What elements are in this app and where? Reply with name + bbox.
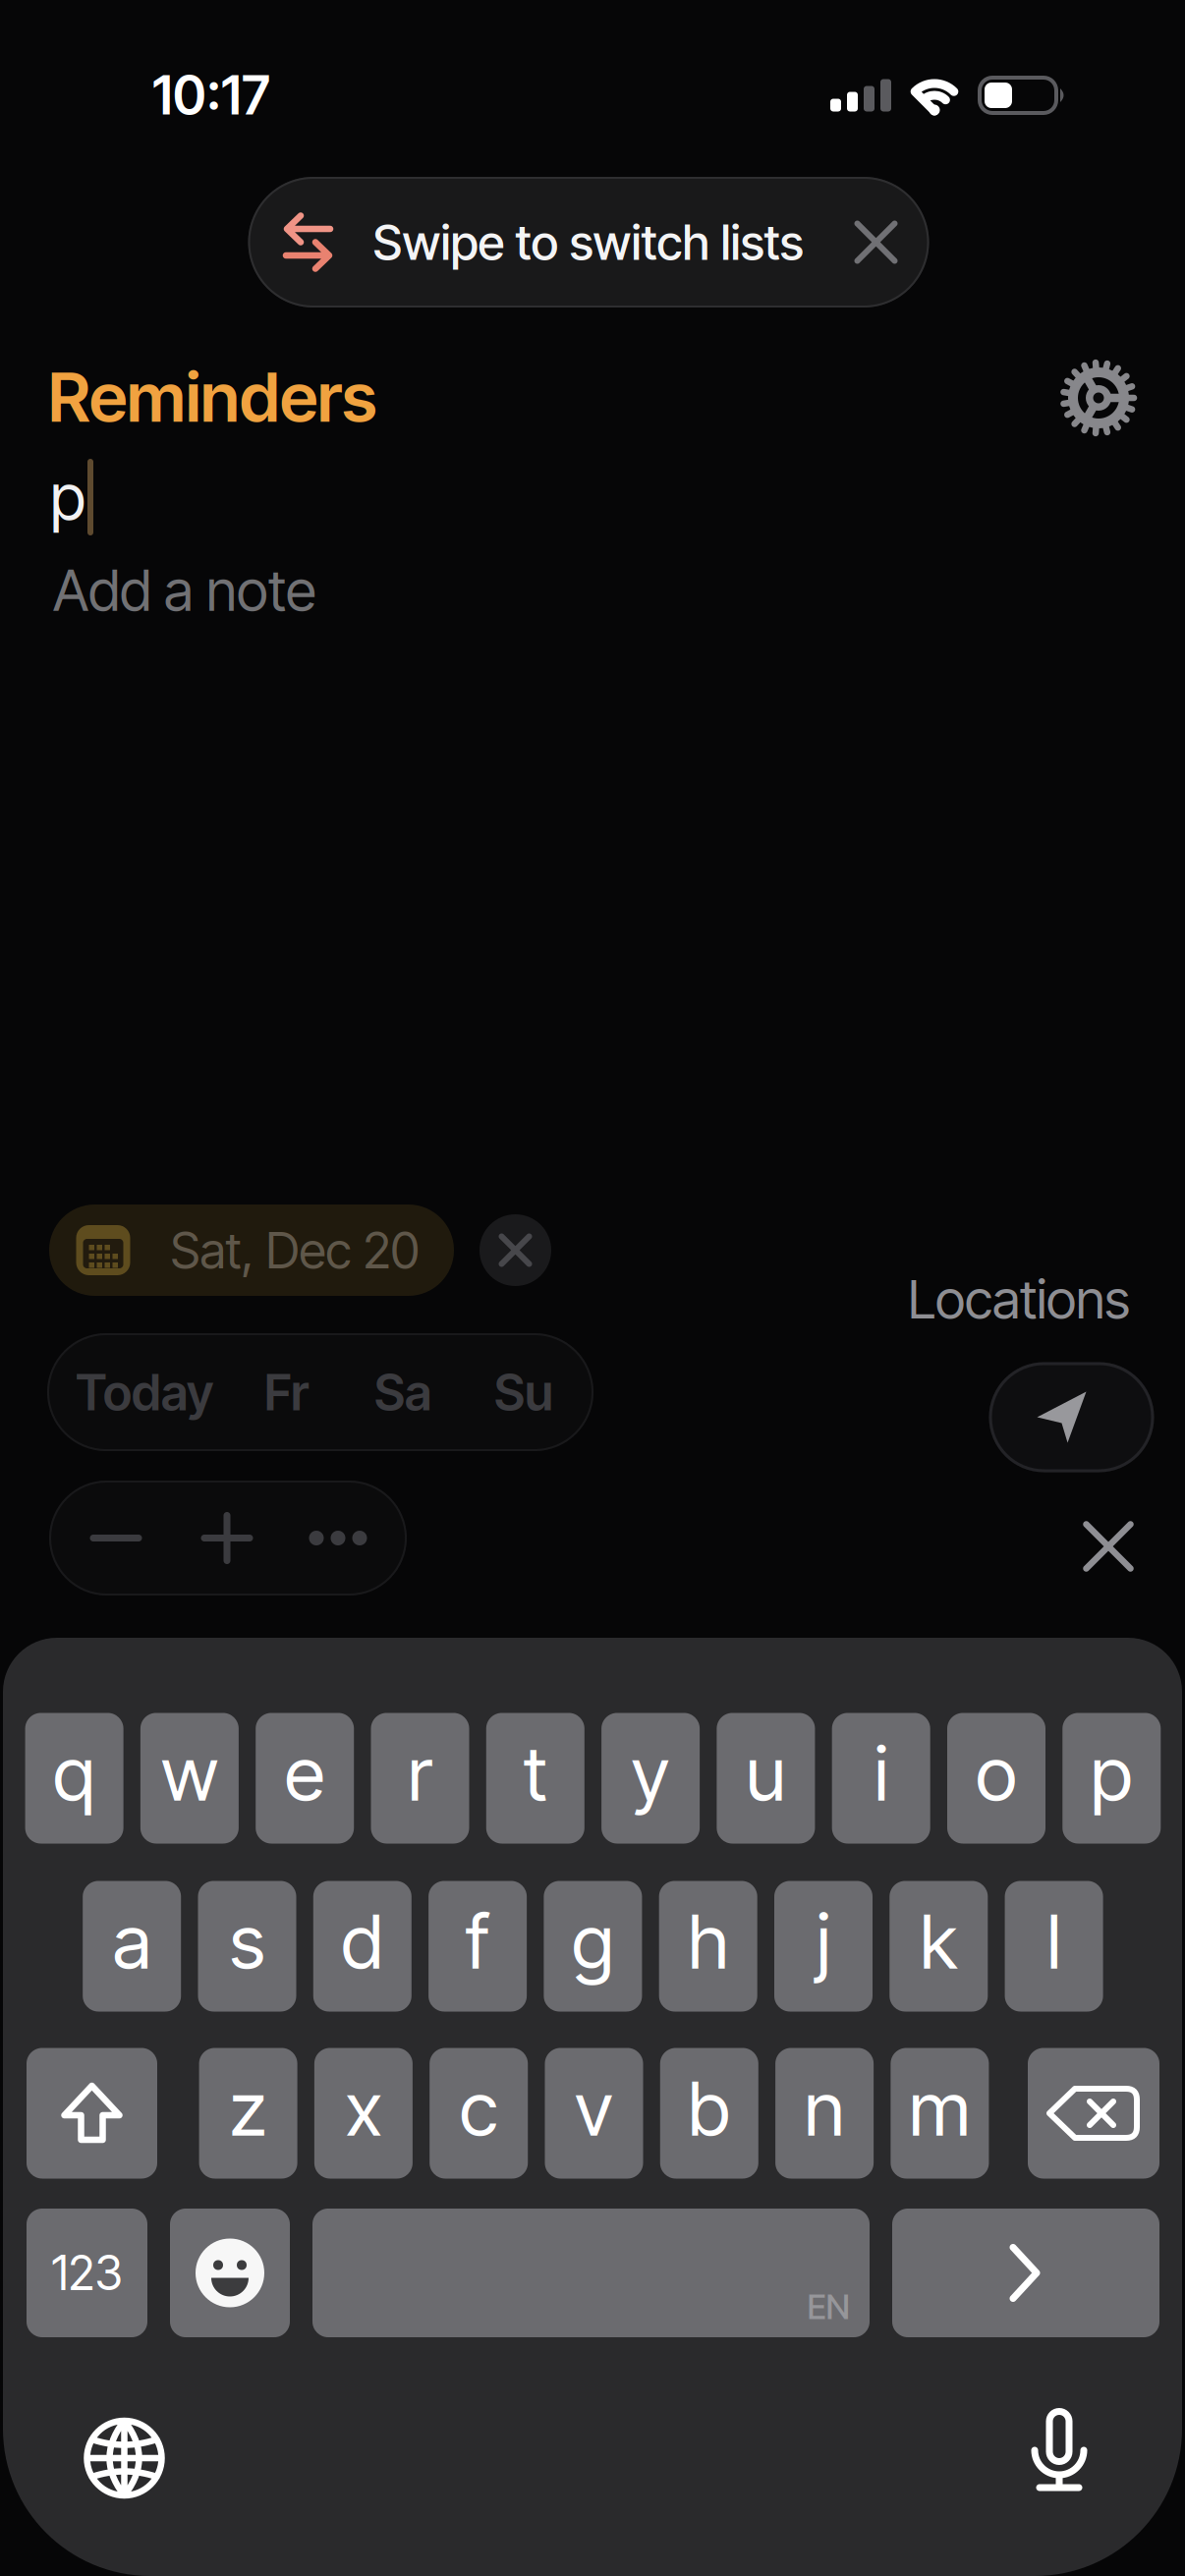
staticText: e: [285, 1728, 325, 1819]
staticText: d: [341, 1896, 384, 1987]
button[interactable]: s: [198, 1881, 296, 2012]
button[interactable]: a: [83, 1881, 181, 2012]
button[interactable]: Decrease: [67, 1481, 165, 1596]
staticText: h: [688, 1896, 728, 1987]
button[interactable]: w: [140, 1713, 239, 1844]
button[interactable]: q: [25, 1713, 123, 1844]
button[interactable]: j: [774, 1881, 873, 2012]
button[interactable]: o: [947, 1713, 1045, 1844]
button[interactable]: n: [775, 2048, 874, 2179]
button[interactable]: r: [371, 1713, 469, 1844]
staticText: v: [575, 2063, 613, 2154]
staticText: z: [230, 2063, 267, 2154]
staticText: Swipe to switch lists: [373, 213, 803, 272]
button[interactable]: Fr: [242, 1333, 331, 1451]
staticText: a: [113, 1896, 151, 1987]
staticText: y: [631, 1728, 670, 1819]
staticText: u: [746, 1728, 786, 1819]
staticText: Reminders: [48, 356, 376, 438]
staticText: Su: [494, 1362, 553, 1422]
staticText: Sat, Dec 20: [170, 1220, 419, 1280]
button[interactable]: i: [832, 1713, 930, 1844]
button[interactable]: Clear date: [480, 1214, 551, 1286]
button[interactable]: k: [890, 1881, 988, 2012]
staticText: m: [909, 2063, 971, 2154]
staticText: i: [874, 1728, 888, 1819]
button[interactable]: c: [430, 2048, 528, 2179]
staticText: n: [804, 2063, 845, 2154]
button[interactable]: t: [486, 1713, 584, 1844]
staticText: t: [524, 1728, 547, 1819]
button[interactable]: Su: [480, 1333, 568, 1451]
staticText: Sa: [374, 1362, 431, 1422]
staticText: q: [53, 1728, 95, 1819]
button[interactable]: z: [199, 2048, 297, 2179]
button[interactable]: Delete: [1028, 2048, 1159, 2179]
staticText: 10:17: [152, 64, 270, 127]
button[interactable]: Dictation: [1020, 2407, 1099, 2497]
button[interactable]: Settings: [1057, 357, 1140, 439]
staticText: o: [976, 1728, 1017, 1819]
button[interactable]: Emoji: [170, 2209, 290, 2337]
staticText: c: [460, 2063, 498, 2154]
button[interactable]: g: [544, 1881, 642, 2012]
button[interactable]: Return: [892, 2209, 1159, 2337]
staticText: b: [688, 2063, 730, 2154]
staticText: f: [466, 1896, 489, 1987]
staticText: Fr: [264, 1362, 309, 1422]
staticText: w: [161, 1728, 218, 1819]
button[interactable]: f: [429, 1881, 527, 2012]
button[interactable]: h: [659, 1881, 757, 2012]
button[interactable]: Shift: [27, 2048, 157, 2179]
staticText: EN: [807, 2286, 849, 2327]
button[interactable]: Space: [312, 2209, 870, 2337]
staticText: s: [229, 1896, 265, 1987]
button[interactable]: Numbers: [27, 2209, 147, 2337]
button[interactable]: Today: [61, 1333, 228, 1451]
button[interactable]: v: [545, 2048, 643, 2179]
button[interactable]: e: [256, 1713, 354, 1844]
button[interactable]: Locations: [908, 1266, 1130, 1331]
staticText: Add a note: [53, 556, 316, 625]
staticText: j: [817, 1896, 830, 1987]
button[interactable]: m: [891, 2048, 989, 2179]
staticText: 123: [52, 2244, 122, 2302]
staticText: l: [1047, 1896, 1061, 1987]
staticText: k: [920, 1896, 957, 1987]
button[interactable]: Sa: [359, 1333, 447, 1451]
button[interactable]: Sat, Dec 20: [49, 1204, 454, 1296]
button[interactable]: More options: [289, 1481, 387, 1596]
button[interactable]: x: [314, 2048, 413, 2179]
staticText: Today: [76, 1362, 213, 1422]
button[interactable]: Current location: [989, 1362, 1154, 1472]
button[interactable]: d: [313, 1881, 412, 2012]
staticText: p: [1090, 1728, 1133, 1819]
button[interactable]: b: [660, 2048, 758, 2179]
button[interactable]: Swipe to switch lists: [248, 177, 929, 308]
button[interactable]: l: [1005, 1881, 1103, 2012]
button[interactable]: Next keyboard: [83, 2417, 166, 2499]
button[interactable]: y: [601, 1713, 700, 1844]
button[interactable]: p: [1062, 1713, 1161, 1844]
staticText: g: [572, 1896, 614, 1987]
button[interactable]: u: [717, 1713, 815, 1844]
staticText: r: [408, 1728, 432, 1819]
staticText: Locations: [908, 1266, 1130, 1331]
button[interactable]: Increase: [178, 1481, 276, 1596]
staticText: p: [50, 459, 85, 535]
staticText: x: [345, 2063, 382, 2154]
button[interactable]: Close: [1074, 1512, 1143, 1581]
